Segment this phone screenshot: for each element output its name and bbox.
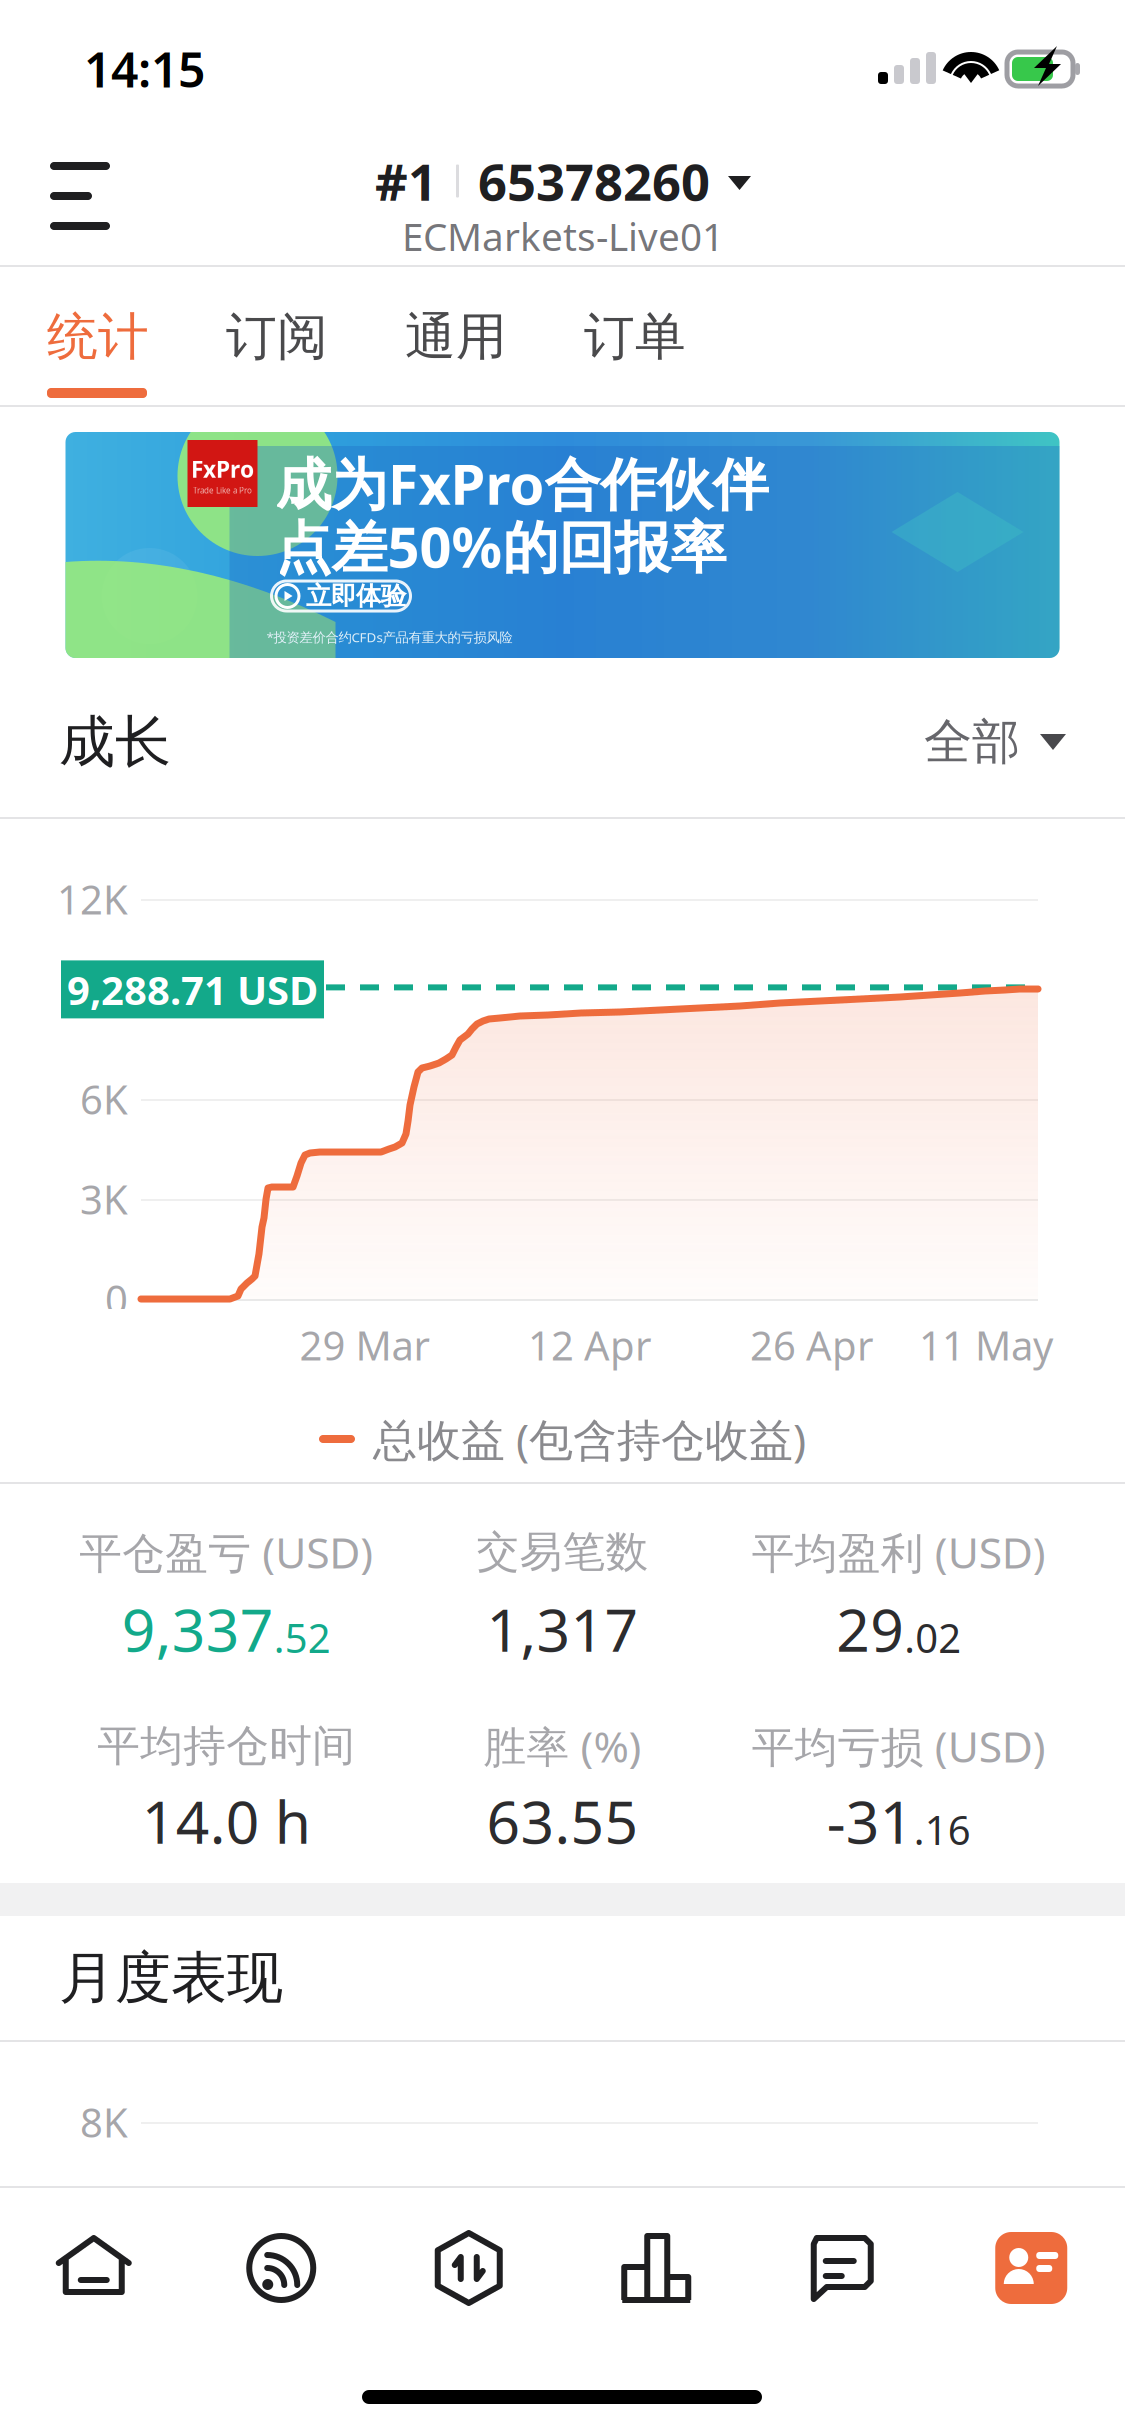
staticText: 成长 xyxy=(59,708,171,776)
staticText: 全部 xyxy=(924,712,1020,771)
button[interactable]: FxPro promotion banner xyxy=(65,432,1059,658)
staticText: 总收益 (包含持仓收益) xyxy=(373,1410,806,1468)
button[interactable]: 通用 xyxy=(405,267,584,405)
staticText: Trade Like a Pro xyxy=(193,485,252,496)
staticText: 63.55 xyxy=(486,1782,638,1860)
button[interactable]: 订单 xyxy=(584,267,763,405)
staticText: -31 xyxy=(827,1782,914,1860)
staticText: 3K xyxy=(80,1172,128,1225)
staticText: 立即体验 xyxy=(306,580,406,611)
staticText: 29 Mar xyxy=(299,1318,430,1371)
staticText: 胜率 (%) xyxy=(483,1718,641,1774)
button[interactable]: Statistics xyxy=(562,2208,750,2328)
staticText: 8K xyxy=(80,2095,128,2148)
button[interactable]: Signals xyxy=(187,2208,375,2328)
staticText: 通用 xyxy=(405,306,507,368)
button[interactable]: Profile xyxy=(937,2208,1125,2328)
staticText: ECMarkets-Live01 xyxy=(402,210,724,262)
staticText: 9,288.71 USD xyxy=(67,963,318,1016)
staticText: 平均持仓时间 xyxy=(97,1720,355,1772)
staticText: 12K xyxy=(57,872,128,925)
staticText: 平仓盈亏 (USD) xyxy=(79,1524,373,1580)
staticText: FxPro xyxy=(191,454,254,484)
staticText: .16 xyxy=(914,1803,971,1856)
button[interactable]: Menu xyxy=(0,128,112,240)
staticText: 11 May xyxy=(919,1318,1053,1371)
staticText: 14.0 h xyxy=(142,1782,311,1860)
staticText: 14:15 xyxy=(84,37,205,101)
staticText: 0 xyxy=(105,1272,128,1325)
button[interactable]: 全部 xyxy=(906,686,1084,797)
staticText: 29 xyxy=(836,1590,904,1668)
button[interactable]: Messages xyxy=(750,2208,937,2328)
staticText: 9,337 xyxy=(122,1590,274,1668)
button[interactable]: 订阅 xyxy=(226,267,405,405)
staticText: 26 Apr xyxy=(750,1318,874,1371)
staticText: 统计 xyxy=(47,306,149,368)
button[interactable]: Trade xyxy=(375,2208,562,2328)
button[interactable]: 统计 xyxy=(47,267,226,405)
staticText: 平均亏损 (USD) xyxy=(752,1718,1046,1774)
staticText: 月度表现 xyxy=(59,1944,283,2012)
staticText: 点差50%的回报率 xyxy=(275,509,726,583)
staticText: 成为FxPro合作伙伴 xyxy=(275,446,768,520)
staticText: 交易笔数 xyxy=(476,1526,648,1578)
staticText: 订阅 xyxy=(226,306,328,368)
staticText: #1 xyxy=(375,147,437,215)
button[interactable]: Home xyxy=(0,2208,187,2328)
staticText: 6K xyxy=(80,1072,128,1125)
staticText: 12 Apr xyxy=(528,1318,652,1371)
staticText: 平均盈利 (USD) xyxy=(752,1524,1046,1580)
staticText: 65378260 xyxy=(478,147,710,215)
button[interactable]: #1 xyxy=(0,128,1125,265)
staticText: 1,317 xyxy=(486,1590,638,1668)
staticText: .52 xyxy=(274,1611,331,1664)
staticText: 订单 xyxy=(584,306,686,368)
staticText: .02 xyxy=(904,1611,961,1664)
staticText: *投资差价合约CFDs产品有重大的亏损风险 xyxy=(266,628,512,646)
